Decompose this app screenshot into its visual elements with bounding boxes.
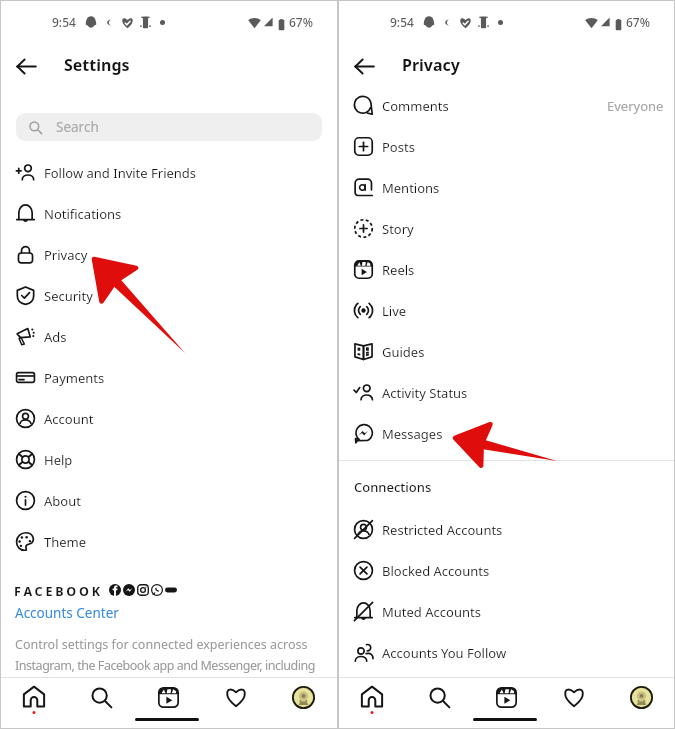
button[interactable]: Activity Status	[339, 372, 674, 413]
staticText: Privacy	[402, 54, 460, 76]
button[interactable]: Theme	[1, 521, 337, 562]
button[interactable]: Search	[422, 680, 456, 714]
button[interactable]: Home	[355, 680, 389, 714]
staticText: About	[44, 492, 81, 510]
button[interactable]: Profile	[624, 680, 658, 714]
button[interactable]: Back	[343, 45, 385, 87]
staticText: Messages	[382, 425, 443, 443]
button[interactable]: Notifications	[1, 193, 337, 234]
staticText: 9:54	[390, 14, 414, 30]
button[interactable]: Home	[17, 680, 51, 714]
staticText: Live	[382, 302, 407, 320]
button[interactable]: Restricted Accounts	[339, 509, 674, 550]
staticText: Search	[56, 118, 99, 136]
staticText: Activity Status	[382, 384, 468, 402]
button[interactable]: Reels	[339, 249, 674, 290]
button[interactable]: Mentions	[339, 167, 674, 208]
staticText: Accounts Center	[15, 604, 119, 622]
button[interactable]: Payments	[1, 357, 337, 398]
button[interactable]: Story	[339, 208, 674, 249]
button[interactable]: Search	[16, 113, 322, 141]
button[interactable]: Security	[1, 275, 337, 316]
staticText: Muted Accounts	[382, 603, 481, 621]
button[interactable]: Ads	[1, 316, 337, 357]
button[interactable]: Reels	[489, 680, 523, 714]
staticText: Notifications	[44, 205, 122, 223]
staticText: 9:54	[52, 14, 76, 30]
button[interactable]: Accounts Center	[15, 604, 119, 622]
staticText: Posts	[382, 138, 415, 156]
button[interactable]: Accounts You Follow	[339, 632, 674, 673]
button[interactable]: Comments	[339, 85, 674, 126]
button[interactable]: Live	[339, 290, 674, 331]
staticText: Restricted Accounts	[382, 521, 503, 539]
button[interactable]: Search	[84, 680, 118, 714]
button[interactable]: Profile	[286, 680, 320, 714]
button[interactable]: Blocked Accounts	[339, 550, 674, 591]
staticText: Guides	[382, 343, 425, 361]
staticText: 67%	[626, 14, 650, 30]
staticText: Payments	[44, 369, 105, 387]
button[interactable]: Messages	[339, 413, 674, 454]
staticText: Story	[382, 220, 414, 238]
button[interactable]: Guides	[339, 331, 674, 372]
staticText: Settings	[64, 54, 130, 76]
button[interactable]: Reels	[151, 680, 185, 714]
staticText: Blocked Accounts	[382, 562, 490, 580]
button[interactable]: Account	[1, 398, 337, 439]
staticText: 67%	[289, 14, 313, 30]
staticText: Comments	[382, 97, 449, 115]
button[interactable]: Posts	[339, 126, 674, 167]
staticText: Instagram, the Facebook app and Messenge…	[15, 657, 315, 674]
button[interactable]: Follow and Invite Friends	[1, 152, 337, 193]
staticText: Help	[44, 451, 73, 469]
staticText: Mentions	[382, 179, 440, 197]
button[interactable]: Back	[5, 45, 47, 87]
staticText: Account	[44, 410, 94, 428]
staticText: Accounts You Follow	[382, 644, 507, 662]
button[interactable]: Likes	[557, 680, 591, 714]
staticText: Privacy	[44, 246, 88, 264]
staticText: Follow and Invite Friends	[44, 164, 197, 182]
staticText: Control settings for connected experienc…	[15, 636, 308, 653]
button[interactable]: Help	[1, 439, 337, 480]
staticText: Security	[44, 287, 93, 305]
staticText: Ads	[44, 328, 67, 346]
button[interactable]: Privacy	[1, 234, 337, 275]
button[interactable]: Muted Accounts	[339, 591, 674, 632]
button[interactable]: Likes	[219, 680, 253, 714]
staticText: Connections	[354, 478, 432, 496]
staticText: Everyone	[607, 97, 664, 115]
staticText: FACEBOOK	[14, 583, 103, 597]
staticText: Theme	[44, 533, 87, 551]
staticText: Reels	[382, 261, 415, 279]
button[interactable]: About	[1, 480, 337, 521]
